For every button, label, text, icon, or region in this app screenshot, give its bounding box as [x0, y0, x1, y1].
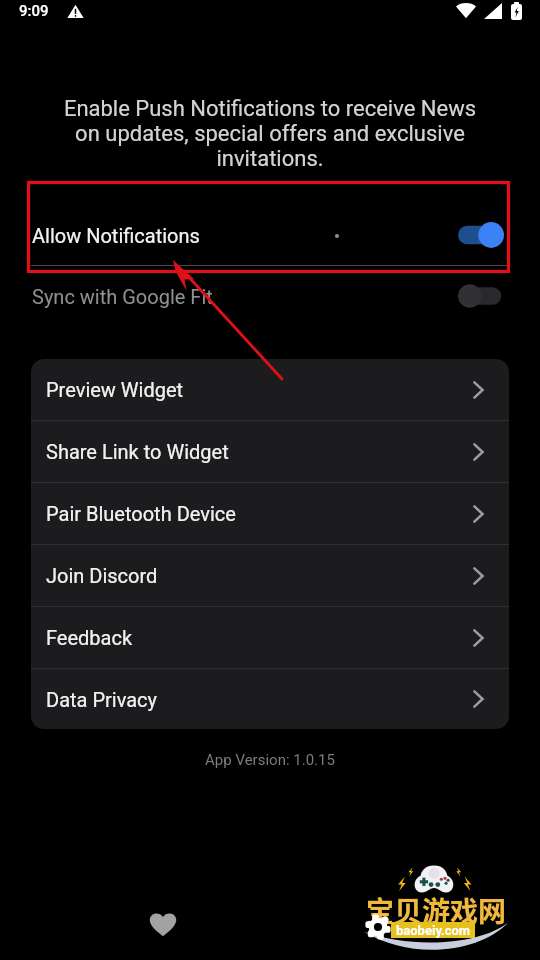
staticText: Allow Notifications — [32, 224, 200, 247]
button[interactable]: Feedback — [31, 607, 509, 668]
staticText: Sync with Google Fit — [32, 285, 213, 308]
staticText: App Version: 1.0.15 — [205, 751, 335, 769]
staticText: Pair Bluetooth Device — [46, 502, 236, 525]
button[interactable]: Allow Notifications, on — [458, 221, 504, 249]
staticText: Feedback — [46, 626, 133, 649]
button[interactable]: Sync with Google Fit, off — [458, 282, 504, 310]
staticText: 宝贝游戏网 — [366, 890, 507, 931]
staticText: Data Privacy — [46, 688, 157, 711]
button[interactable]: Allow Notifications — [0, 205, 540, 265]
staticText: Join Discord — [46, 564, 158, 587]
button[interactable]: Sync with Google Fit — [0, 266, 540, 326]
staticText: baobeiy.com — [396, 923, 471, 938]
staticText: Enable Push Notifications to receive New… — [56, 96, 484, 172]
button[interactable]: Preview Widget — [31, 359, 509, 420]
button[interactable]: Data Privacy — [31, 669, 509, 729]
staticText: Share Link to Widget — [46, 440, 229, 463]
staticText: Preview Widget — [46, 378, 184, 401]
button[interactable]: Join Discord — [31, 545, 509, 606]
button[interactable]: Share Link to Widget — [31, 421, 509, 482]
button[interactable]: Favorite — [149, 911, 177, 937]
button[interactable]: Pair Bluetooth Device — [31, 483, 509, 544]
staticText: 9:09 — [19, 2, 49, 20]
